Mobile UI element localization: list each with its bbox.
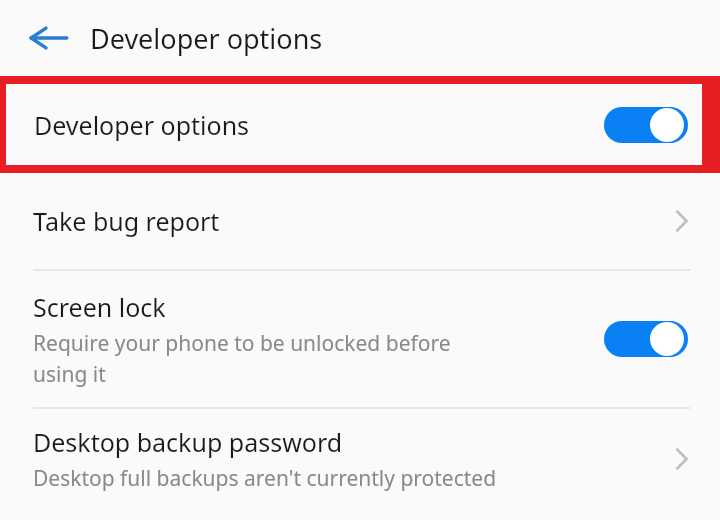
staticText: Screen lock	[33, 290, 166, 324]
button[interactable]: Back	[20, 10, 76, 66]
staticText: Desktop full backups aren't currently pr…	[33, 464, 497, 493]
button[interactable]: Desktop backup password	[0, 409, 720, 509]
staticText: Developer options	[34, 108, 250, 142]
button[interactable]: Toggle	[604, 106, 688, 144]
staticText: Require your phone to be unlocked before…	[33, 329, 451, 388]
staticText: Desktop backup password	[33, 425, 343, 459]
staticText: Take bug report	[33, 204, 220, 238]
button[interactable]: Toggle	[604, 320, 688, 358]
button[interactable]: Developer options	[6, 84, 702, 165]
button[interactable]: Take bug report	[0, 173, 720, 269]
button[interactable]: Screen lock	[0, 271, 720, 407]
staticText: Developer options	[90, 20, 323, 57]
